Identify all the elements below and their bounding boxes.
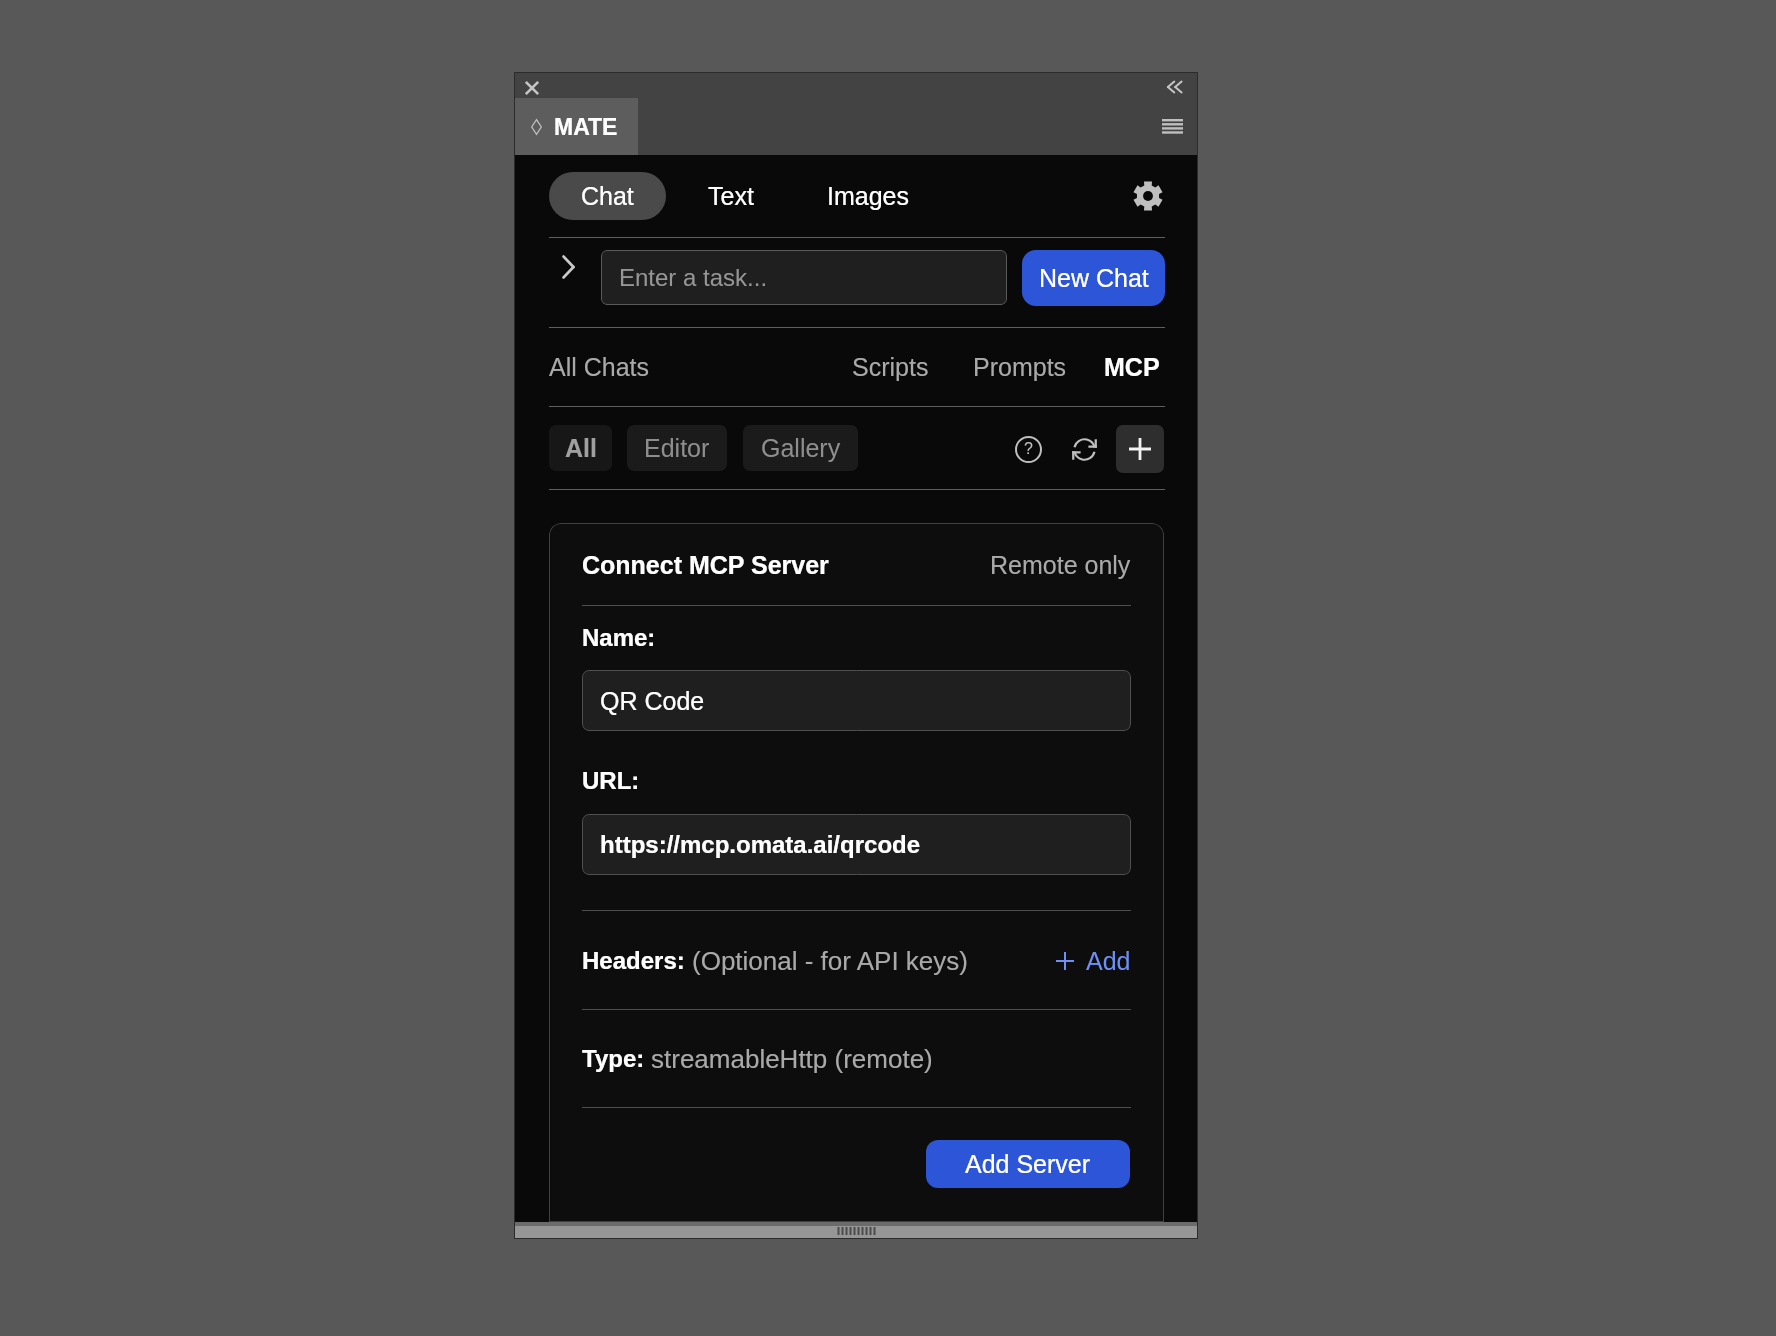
button[interactable]: New Chat (1022, 250, 1165, 306)
button[interactable]: Add (1056, 946, 1131, 975)
button[interactable]: All (549, 425, 612, 471)
staticText: MATE (554, 114, 618, 140)
button[interactable]: Chat (549, 172, 666, 220)
staticText: ? (1024, 440, 1033, 458)
staticText: Text (708, 182, 754, 210)
staticText: Headers: (582, 947, 692, 974)
button[interactable]: Editor (627, 425, 727, 471)
staticText: Name: (582, 624, 656, 651)
button[interactable]: Images (815, 172, 921, 220)
staticText: Add Server (965, 1150, 1091, 1178)
button[interactable]: Expand (550, 249, 586, 285)
button[interactable]: Menu (1154, 111, 1191, 142)
staticText: QR Code (600, 687, 705, 715)
staticText: (Optional - for API keys) (692, 946, 968, 975)
button[interactable]: Close (520, 76, 544, 100)
staticText: Images (827, 182, 909, 210)
button[interactable]: Settings (1125, 173, 1171, 219)
staticText: streamableHttp (remote) (651, 1044, 933, 1073)
button[interactable]: Help (1005, 426, 1051, 472)
button[interactable]: Gallery (743, 425, 858, 471)
staticText: Connect MCP Server (582, 551, 829, 579)
staticText: All Chats (549, 353, 650, 381)
staticText: Add (1086, 947, 1131, 975)
button[interactable]: Collapse panel (1161, 77, 1187, 97)
staticText: Type: (582, 1045, 651, 1072)
button[interactable]: Text (696, 172, 766, 220)
button[interactable]: Prompts (973, 327, 1067, 406)
staticText: Scripts (852, 353, 929, 381)
staticText: MCP (1104, 353, 1160, 381)
button[interactable]: MATE (514, 98, 638, 155)
staticText: Remote only (990, 551, 1131, 579)
staticText: URL: (582, 767, 640, 794)
button[interactable]: All Chats (549, 327, 650, 406)
staticText: Prompts (973, 353, 1067, 381)
button[interactable]: Add Server (926, 1140, 1130, 1188)
button[interactable]: Refresh (1061, 426, 1107, 472)
staticText: New Chat (1039, 264, 1149, 292)
staticText: Chat (581, 182, 634, 210)
button[interactable]: Enter a task... (601, 250, 1007, 305)
staticText: Editor (644, 434, 710, 462)
staticText: Gallery (761, 434, 841, 462)
button[interactable]: QR Code (582, 670, 1131, 731)
button[interactable]: Scripts (852, 327, 929, 406)
staticText: All (565, 434, 597, 462)
button[interactable]: Add server (1116, 425, 1164, 473)
staticText: https://mcp.omata.ai/qrcode (600, 831, 921, 858)
button[interactable]: https://mcp.omata.ai/qrcode (582, 814, 1131, 875)
button[interactable]: MCP (1104, 327, 1160, 406)
staticText: Enter a task... (619, 264, 768, 291)
